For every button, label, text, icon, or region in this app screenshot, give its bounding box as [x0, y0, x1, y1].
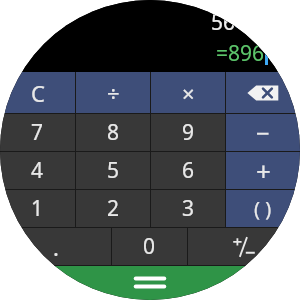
staticText: 6 — [182, 156, 195, 185]
staticText: × — [182, 78, 195, 108]
button[interactable]: 0 — [112, 228, 187, 265]
staticText: − — [256, 116, 270, 149]
staticText: 0 — [143, 232, 156, 261]
button[interactable]: ÷ — [76, 72, 150, 113]
staticText: . — [53, 232, 59, 262]
staticText: ( ) — [254, 195, 272, 222]
staticText: 3 — [182, 194, 195, 223]
button[interactable]: . — [0, 228, 111, 265]
button[interactable]: 2 — [76, 190, 150, 227]
button[interactable]: C — [0, 72, 75, 113]
staticText: 1 — [31, 194, 44, 223]
button[interactable]: Equals — [0, 266, 300, 300]
staticText: 9 — [182, 118, 195, 147]
button[interactable]: 4 — [0, 152, 75, 189]
staticText: 5 — [107, 156, 120, 185]
button[interactable]: − — [226, 114, 300, 151]
button[interactable]: × — [151, 72, 225, 113]
staticText: 7 — [31, 118, 44, 147]
button[interactable]: Backspace — [226, 72, 300, 113]
staticText: =896 — [216, 39, 265, 68]
button[interactable]: 3 — [151, 190, 225, 227]
button[interactable]: + — [226, 152, 300, 189]
staticText: 4 — [31, 156, 44, 185]
button[interactable]: 5 — [76, 152, 150, 189]
staticText: + — [256, 153, 271, 188]
button[interactable]: 6 — [151, 152, 225, 189]
button[interactable]: Plus minus sign — [188, 228, 300, 265]
staticText: C — [31, 78, 45, 108]
button[interactable]: 1 — [0, 190, 75, 227]
staticText: 56×16 — [211, 8, 268, 37]
button[interactable]: ( ) — [226, 190, 300, 227]
button[interactable]: 7 — [0, 114, 75, 151]
staticText: 8 — [107, 118, 120, 147]
button[interactable]: 8 — [76, 114, 150, 151]
staticText: 2 — [107, 194, 120, 223]
staticText: ÷ — [107, 78, 120, 108]
button[interactable]: 9 — [151, 114, 225, 151]
